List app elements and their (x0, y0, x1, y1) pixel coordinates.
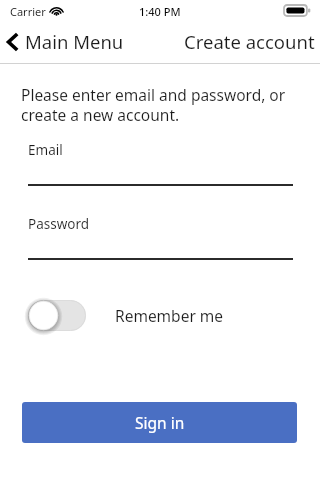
button[interactable]: Create account (184, 29, 315, 54)
staticText: 1:40 PM (139, 4, 181, 19)
staticText: Email (28, 141, 63, 159)
other: Remember me toggle (28, 300, 86, 331)
staticText: Sign in (135, 412, 185, 433)
button[interactable]: Back (6, 29, 124, 54)
staticText: Please enter email and password, or crea… (21, 84, 286, 125)
button[interactable]: Remember me toggle (28, 300, 224, 331)
other: Back (6, 32, 20, 52)
staticText: Create account (184, 29, 315, 54)
button[interactable]: Sign in (22, 402, 297, 443)
staticText: Password (28, 215, 90, 233)
staticText: Remember me (115, 305, 224, 326)
staticText: Main Menu (25, 29, 124, 54)
staticText: Carrier (10, 4, 46, 19)
